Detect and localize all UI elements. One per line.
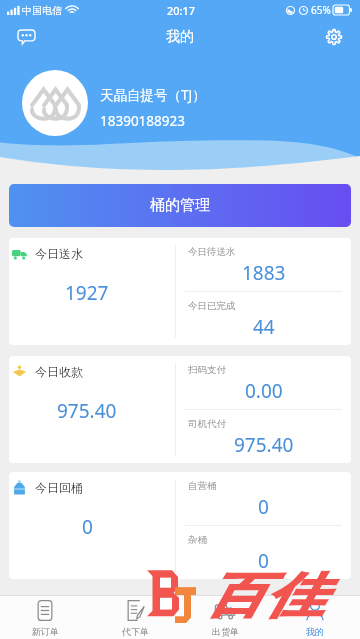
staticText: 20:17 (167, 3, 196, 18)
staticText: 中国电信 (22, 4, 62, 17)
staticText: 今日待送水 (188, 246, 236, 258)
staticText: 65% (311, 3, 331, 17)
staticText: 天晶自提号（TJ） (100, 86, 206, 104)
staticText: 我的 (306, 626, 324, 637)
button[interactable]: 我的 (270, 596, 360, 639)
staticText: 代下单 (122, 626, 149, 637)
staticText: 0 (82, 514, 93, 540)
staticText: 18390188923 (100, 112, 185, 130)
staticText: 1927 (65, 280, 109, 306)
staticText: 0 (258, 494, 269, 520)
button[interactable]: 今日回桶 (9, 472, 351, 579)
staticText: 百佳 (205, 566, 324, 626)
staticText: 今日收款 (35, 364, 83, 379)
staticText: 司机代付 (188, 418, 226, 430)
button[interactable]: Messages (0, 20, 52, 53)
staticText: 新订单 (32, 626, 59, 637)
staticText: 杂桶 (188, 534, 207, 546)
staticText: 975.40 (57, 398, 117, 424)
button[interactable]: 出货单 (180, 596, 270, 639)
staticText: 自营桶 (188, 480, 217, 492)
button[interactable]: Avatar (22, 70, 88, 136)
button[interactable]: 新订单 (0, 596, 90, 639)
button[interactable]: Settings (308, 20, 360, 53)
staticText: 今日已完成 (188, 300, 236, 312)
button[interactable]: 今日收款 (9, 356, 351, 463)
button[interactable]: 桶的管理 (9, 184, 351, 227)
staticText: 桶的管理 (150, 196, 210, 215)
staticText: 0.00 (245, 378, 283, 404)
staticText: 我的 (166, 28, 194, 46)
staticText: 今日回桶 (35, 480, 83, 495)
button[interactable]: 今日送水 (9, 238, 351, 345)
staticText: 扫码支付 (188, 364, 226, 376)
staticText: 1883 (242, 260, 286, 286)
button[interactable]: 代下单 (90, 596, 180, 639)
staticText: 出货单 (212, 626, 239, 637)
staticText: 975.40 (234, 432, 294, 458)
staticText: 今日送水 (35, 246, 83, 261)
staticText: 0 (258, 548, 269, 574)
staticText: 44 (253, 314, 275, 340)
